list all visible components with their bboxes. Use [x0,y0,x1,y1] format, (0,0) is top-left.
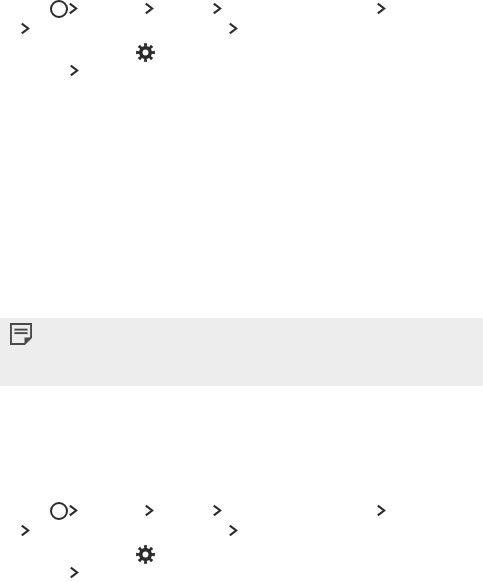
button[interactable]: Next step [144,2,154,15]
button[interactable]: Next step [20,22,30,35]
button[interactable]: Next step [376,2,386,15]
button[interactable]: Next step [68,504,78,517]
button[interactable]: Home [50,502,68,520]
button[interactable]: Next step [144,504,154,517]
button[interactable]: Next step [228,22,238,35]
button[interactable]: Settings [136,43,155,62]
button[interactable]: Next step [228,524,238,537]
button[interactable]: Next step [69,64,79,77]
button[interactable]: Settings [136,545,155,564]
button[interactable]: Next step [212,504,222,517]
button[interactable]: Next step [376,504,386,517]
button[interactable]: Next step [69,566,79,579]
button[interactable]: Next step [68,2,78,15]
button[interactable]: Home [50,0,68,18]
button[interactable]: Next step [212,2,222,15]
button[interactable] [0,318,483,386]
button[interactable]: Next step [20,524,30,537]
